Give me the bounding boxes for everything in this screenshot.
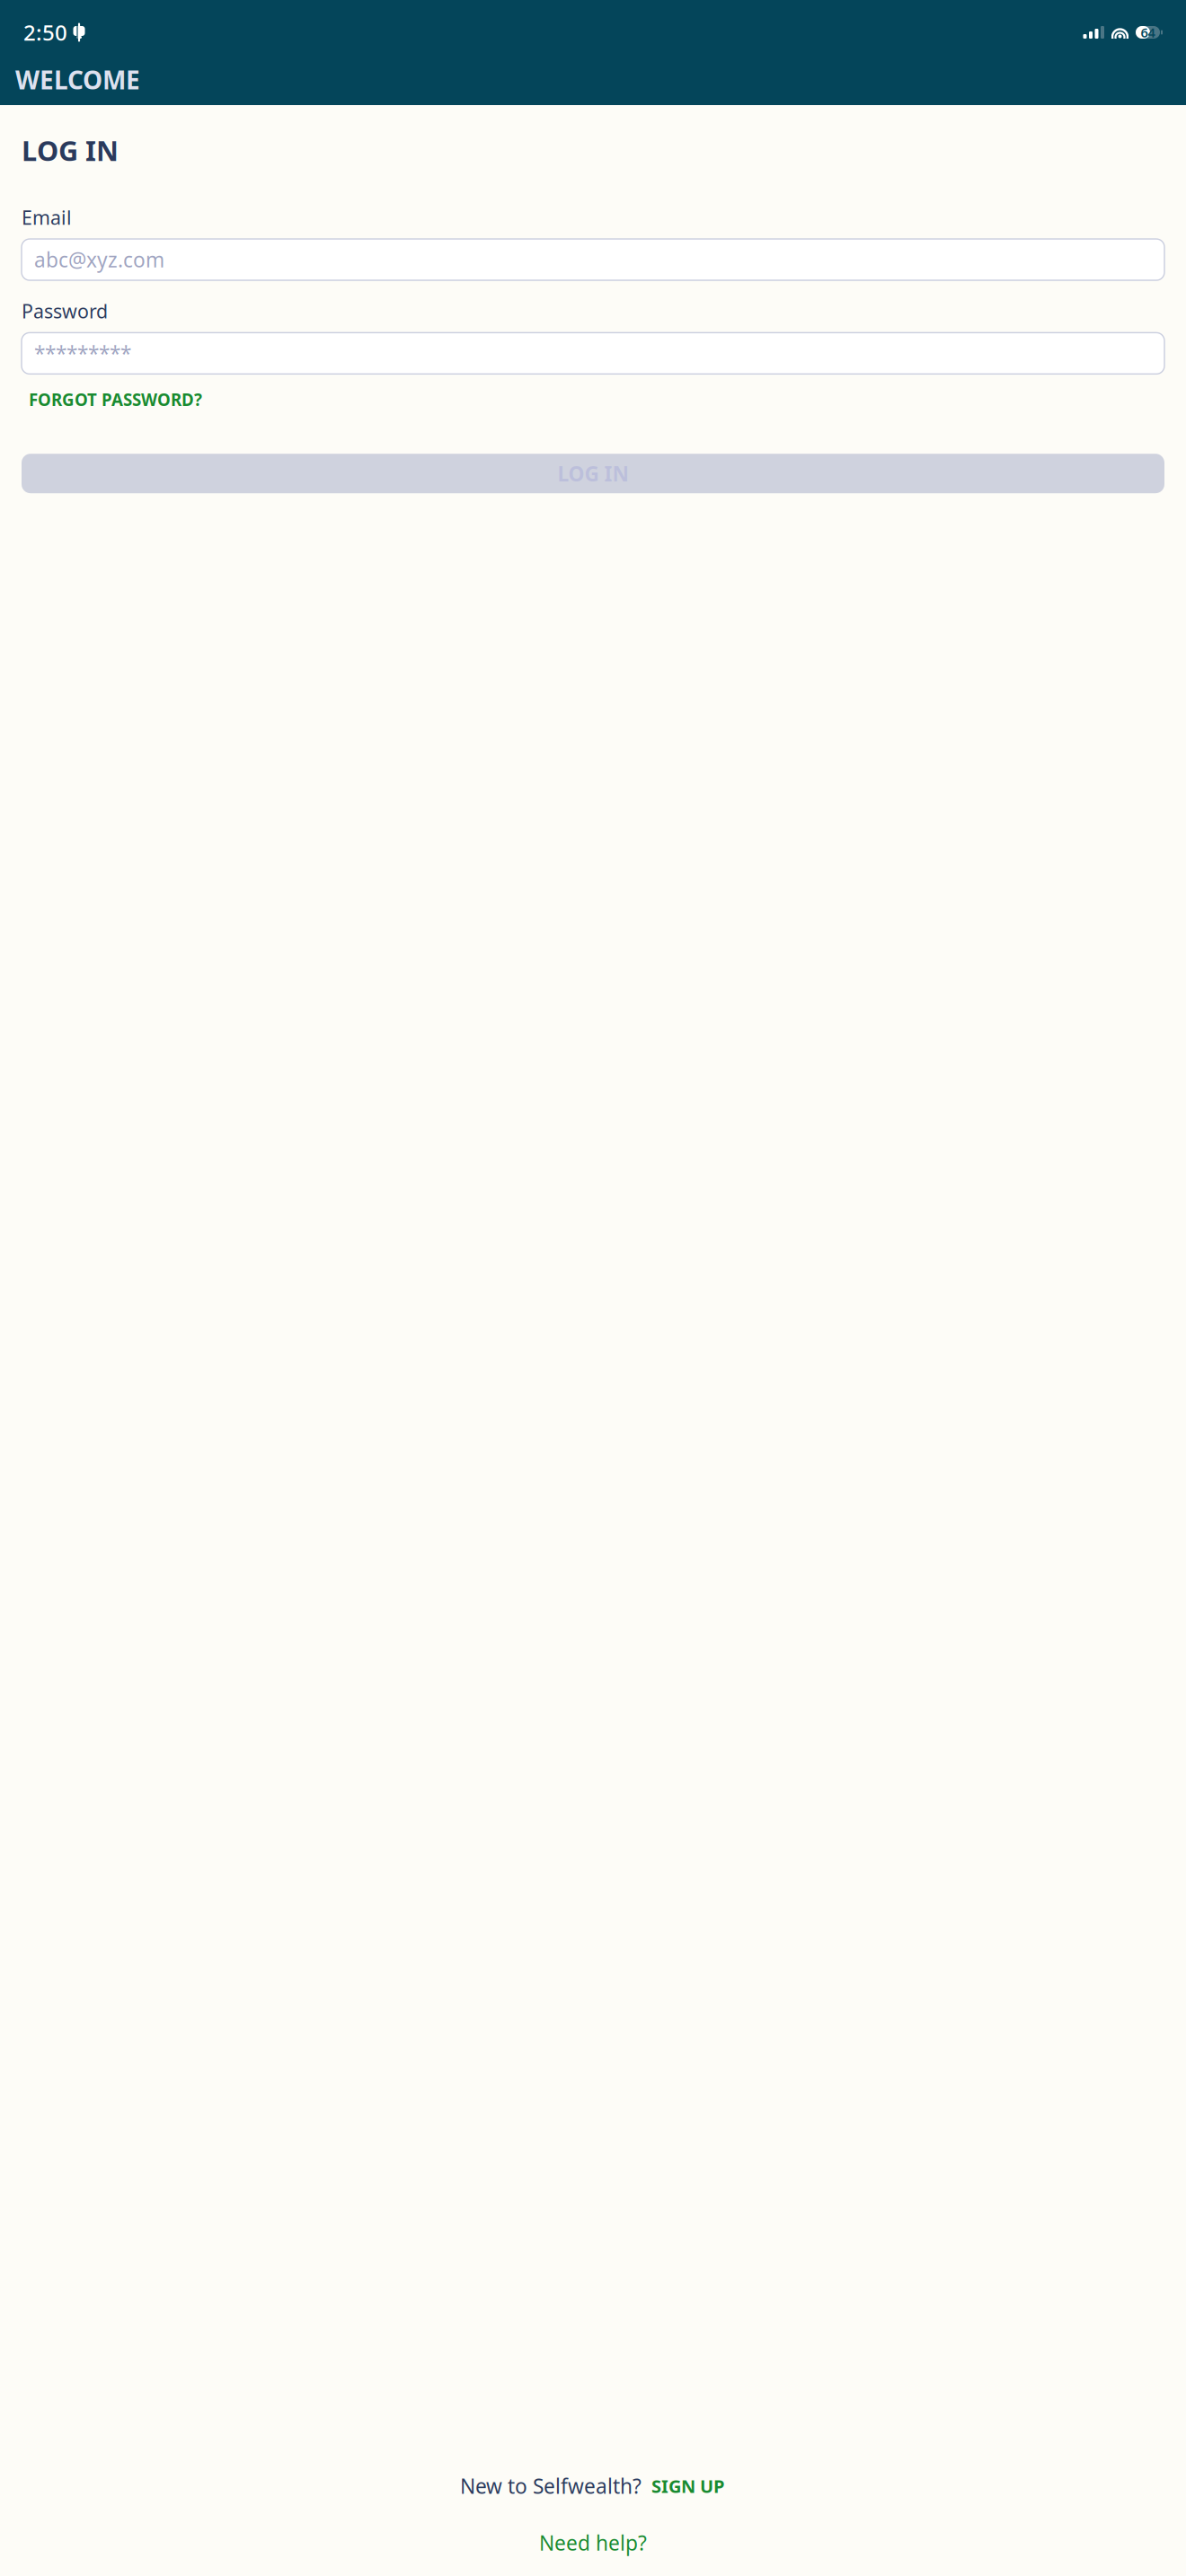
staticText: Email <box>22 205 72 230</box>
staticText: 64 <box>1141 24 1155 41</box>
staticText: ********* <box>34 340 131 367</box>
staticText: New to Selfwealth? <box>460 2472 642 2499</box>
button[interactable]: Need help? <box>532 2524 654 2562</box>
staticText: LOG IN <box>558 460 628 487</box>
button[interactable]: FORGOT PASSWORD? <box>29 383 202 416</box>
staticText: WELCOME <box>15 63 140 96</box>
staticText: Need help? <box>539 2529 647 2556</box>
button[interactable]: SIGN UP <box>650 2470 726 2501</box>
button[interactable]: abc@xyz.com <box>22 239 1164 280</box>
staticText: FORGOT PASSWORD? <box>29 388 202 411</box>
staticText: LOG IN <box>22 132 119 169</box>
button[interactable]: ********* <box>22 333 1164 374</box>
staticText: Password <box>22 298 108 324</box>
staticText: abc@xyz.com <box>34 246 164 273</box>
staticText: 2:50 <box>23 18 67 47</box>
staticText: SIGN UP <box>651 2474 724 2498</box>
